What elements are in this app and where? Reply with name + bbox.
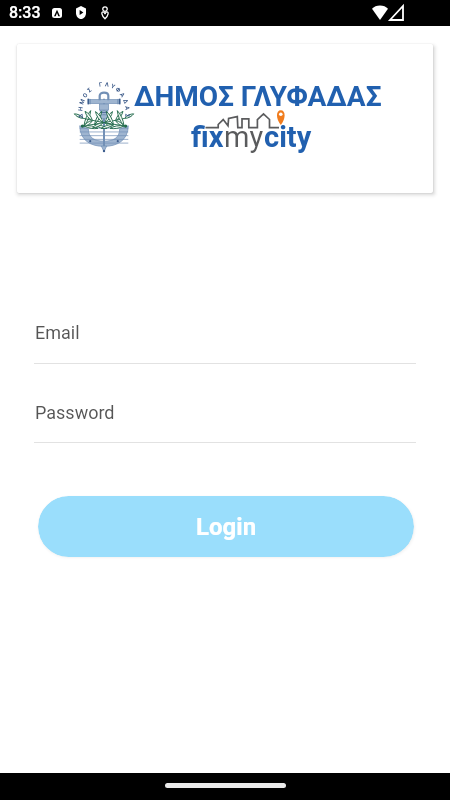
other: Health [101,7,109,19]
other: Mobile signal [390,6,403,20]
other: App notification [52,8,62,18]
other: Wi-Fi [372,6,388,20]
staticText: 8:33 [9,3,41,22]
staticText: city [264,120,312,154]
button[interactable]: Login [38,496,414,557]
staticText: Password [35,402,115,423]
staticText: fix [191,120,224,154]
other: Play Protect [76,6,86,19]
other: Home [165,783,286,788]
staticText: Login [196,513,257,541]
staticText: Email [35,322,80,343]
staticText: my [224,120,264,154]
staticText: ΔΗΜΟΣ ΓΛΥΦΑΔΑΣ [134,80,382,113]
